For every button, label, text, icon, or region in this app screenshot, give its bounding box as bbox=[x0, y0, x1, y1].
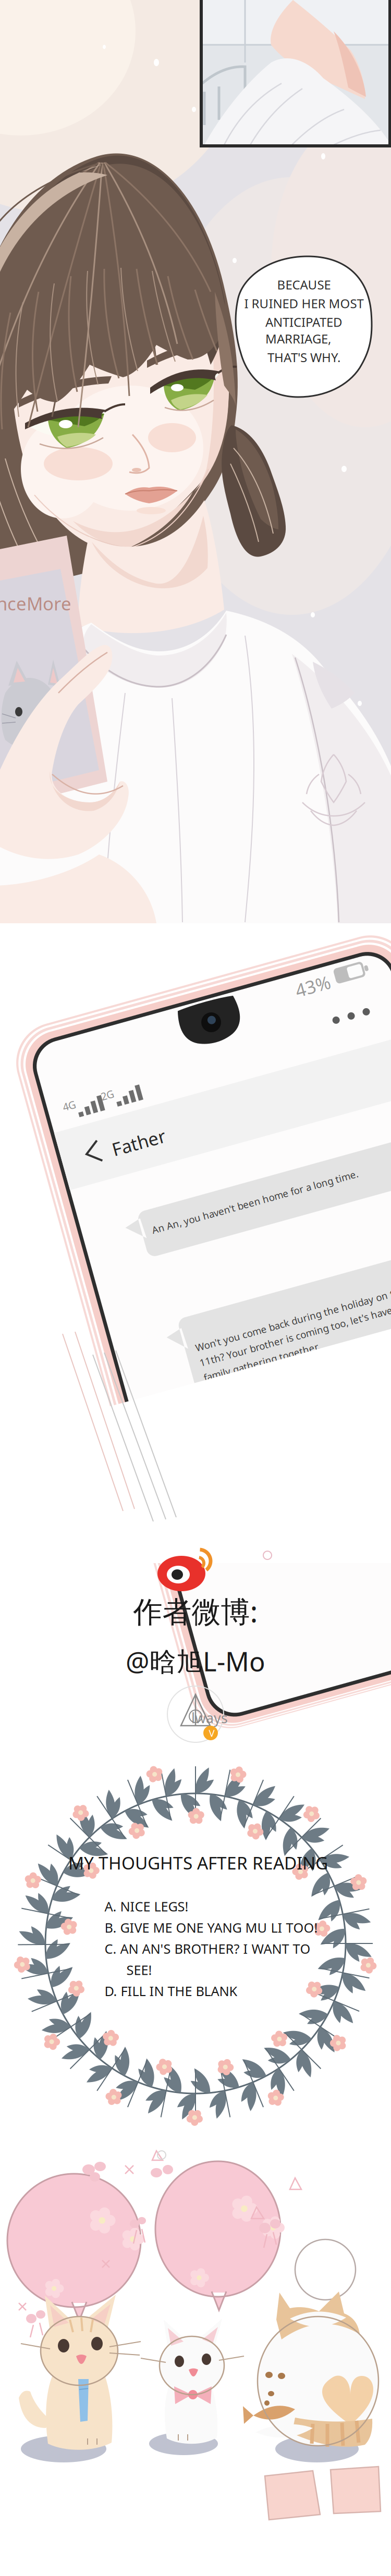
staticText: SEE! bbox=[105, 1961, 152, 1979]
staticText: 作者微博: bbox=[133, 1592, 258, 1630]
staticText: Won't you come back during the holiday o… bbox=[195, 1313, 391, 1326]
staticText: An An, you haven't been home for a long … bbox=[185, 1188, 391, 1201]
staticText: nceMore bbox=[0, 591, 71, 615]
staticText: B. GIVE ME ONE YANG MU LI TOO! bbox=[105, 1919, 318, 1936]
staticText: MY THOUGHTS AFTER READING bbox=[68, 1851, 328, 1874]
staticText: lways bbox=[191, 1709, 228, 1727]
staticText: D. FILL IN THE BLANK bbox=[105, 1982, 237, 2000]
staticText: @晗旭L-Mo bbox=[126, 1644, 265, 1679]
staticText: A. NICE LEGS! bbox=[105, 1898, 188, 1915]
staticText: THAT'S WHY. bbox=[267, 349, 340, 366]
staticText: ANTICIPATED MARRIAGE, bbox=[265, 314, 343, 347]
staticText: I RUINED HER MOST bbox=[244, 295, 364, 312]
staticText: BECAUSE bbox=[277, 276, 331, 293]
staticText: 11th? Your brother is coming too, let's … bbox=[195, 1329, 391, 1341]
staticText: V bbox=[209, 1727, 215, 1739]
staticText: family gathering together. bbox=[195, 1344, 315, 1357]
staticText: C. AN AN'S BROTHER? I WANT TO bbox=[105, 1940, 310, 1957]
